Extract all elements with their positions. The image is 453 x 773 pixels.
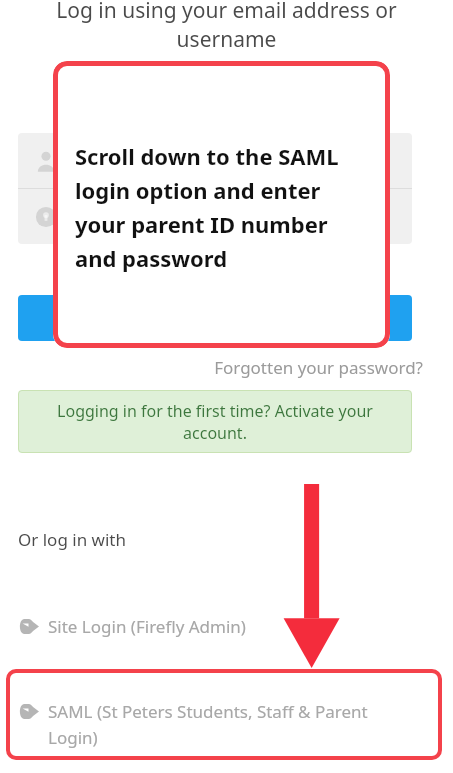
staticText: Site Login (Firefly Admin) <box>48 615 246 638</box>
button[interactable]: Logging in for the first time? Activate … <box>18 390 412 453</box>
staticText: Or log in with <box>18 528 126 551</box>
button[interactable] <box>18 189 412 244</box>
staticText: Logging in for the first time? Activate … <box>44 400 386 444</box>
button[interactable]: Firefly login provider <box>18 700 418 749</box>
button[interactable]: Forgotten your password? <box>0 356 423 379</box>
button[interactable]: Firefly login provider <box>18 615 246 638</box>
staticText: Scroll down to the SAML login option and… <box>75 141 372 273</box>
staticText: SAML (St Peters Students, Staff & Parent… <box>48 700 418 749</box>
staticText: Log in using your email address or usern… <box>14 0 439 54</box>
button[interactable] <box>18 295 412 341</box>
button[interactable] <box>18 133 412 188</box>
other: Firefly login provider <box>18 619 39 634</box>
staticText: Forgotten your password? <box>214 356 423 379</box>
other: Firefly login provider <box>18 704 39 719</box>
